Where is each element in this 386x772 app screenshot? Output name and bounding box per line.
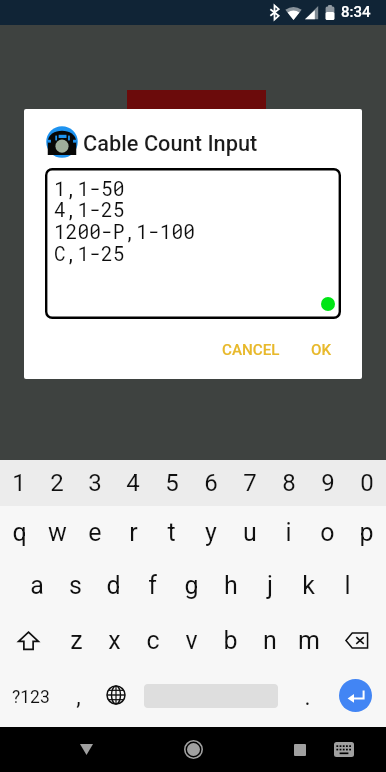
staticText: 1 <box>12 469 26 497</box>
staticText: 7 <box>243 469 257 497</box>
staticText: q <box>12 518 27 547</box>
button[interactable]: k <box>289 558 328 613</box>
staticText: e <box>88 518 102 547</box>
button[interactable]: s <box>56 558 94 613</box>
staticText: 9 <box>321 469 335 497</box>
button[interactable]: i <box>269 506 308 558</box>
button[interactable]: o <box>308 506 347 558</box>
button[interactable]: z <box>57 613 95 668</box>
staticText: v <box>185 626 198 655</box>
staticText: 4 <box>126 469 140 497</box>
button[interactable]: u <box>230 506 269 558</box>
staticText: x <box>108 626 121 655</box>
button[interactable]: 8 <box>269 460 308 506</box>
staticText: ?123 <box>12 687 50 708</box>
button[interactable]: x <box>95 613 133 668</box>
staticText: c <box>146 626 160 655</box>
staticText: z <box>70 626 83 655</box>
staticText: . <box>304 684 311 711</box>
button[interactable]: j <box>250 558 289 613</box>
staticText: 8:34 <box>341 3 371 21</box>
button[interactable]: f <box>133 558 172 613</box>
staticText: i <box>285 518 292 547</box>
button[interactable]: , <box>59 668 97 727</box>
button[interactable]: r <box>114 506 152 558</box>
button[interactable]: w <box>38 506 76 558</box>
staticText: n <box>263 626 277 655</box>
staticText: y <box>205 518 217 547</box>
staticText: u <box>243 518 257 547</box>
staticText: a <box>30 571 44 600</box>
button[interactable]: Home <box>173 727 213 772</box>
button[interactable]: Backspace <box>328 613 386 668</box>
staticText: b <box>223 626 238 655</box>
button[interactable]: 9 <box>308 460 347 506</box>
staticText: d <box>106 571 121 600</box>
staticText: 0 <box>360 469 374 497</box>
staticText: 5 <box>165 469 179 497</box>
button[interactable]: 5 <box>152 460 191 506</box>
staticText: w <box>48 518 67 547</box>
staticText: p <box>359 518 374 547</box>
button[interactable]: d <box>94 558 133 613</box>
button[interactable]: a <box>18 558 56 613</box>
staticText: r <box>129 518 138 547</box>
staticText: 6 <box>204 469 218 497</box>
button[interactable]: CANCEL <box>214 334 288 366</box>
button[interactable]: Space <box>136 666 286 725</box>
staticText: o <box>320 518 335 547</box>
button[interactable]: q <box>0 506 38 558</box>
button[interactable]: h <box>211 558 250 613</box>
button[interactable]: l <box>328 558 367 613</box>
button[interactable]: 4 <box>114 460 152 506</box>
staticText: 1,1-50 4,1-25 1200-P,1-100 C,1-25 <box>54 175 196 267</box>
button[interactable]: t <box>152 506 191 558</box>
staticText: 2 <box>50 469 64 497</box>
button[interactable]: Back <box>66 727 106 772</box>
staticText: f <box>148 571 157 600</box>
button[interactable]: c <box>133 613 172 668</box>
button[interactable]: 3 <box>76 460 114 506</box>
staticText: CANCEL <box>222 341 280 359</box>
button[interactable]: Recents <box>280 727 320 772</box>
button[interactable]: Enter <box>330 666 380 725</box>
button[interactable]: Switch keyboard <box>324 727 364 772</box>
button[interactable]: e <box>76 506 114 558</box>
staticText: s <box>69 571 82 600</box>
staticText: OK <box>311 341 332 359</box>
staticText: l <box>344 571 351 600</box>
staticText: g <box>184 571 199 600</box>
button[interactable]: g <box>172 558 211 613</box>
button[interactable]: v <box>172 613 211 668</box>
staticText: Cable Count Input <box>83 131 258 157</box>
staticText: t <box>167 518 176 547</box>
button[interactable]: Change language <box>96 665 136 724</box>
staticText: h <box>224 571 238 600</box>
button[interactable]: p <box>347 506 386 558</box>
button[interactable]: ?123 <box>0 668 61 727</box>
staticText: k <box>302 571 315 600</box>
button[interactable]: 1 <box>0 460 38 506</box>
button[interactable]: 7 <box>230 460 269 506</box>
button[interactable]: OK <box>303 334 340 366</box>
staticText: j <box>267 571 273 600</box>
staticText: m <box>298 626 320 655</box>
button[interactable]: . <box>288 668 326 727</box>
button[interactable]: Shift <box>0 613 57 668</box>
button[interactable]: n <box>250 613 289 668</box>
button[interactable]: 0 <box>347 460 386 506</box>
button[interactable]: b <box>211 613 250 668</box>
button[interactable]: 6 <box>191 460 230 506</box>
staticText: 8 <box>282 469 296 497</box>
staticText: 3 <box>88 469 102 497</box>
button[interactable]: y <box>191 506 230 558</box>
button[interactable]: 2 <box>38 460 76 506</box>
button[interactable]: m <box>289 613 328 668</box>
staticText: , <box>76 684 81 711</box>
